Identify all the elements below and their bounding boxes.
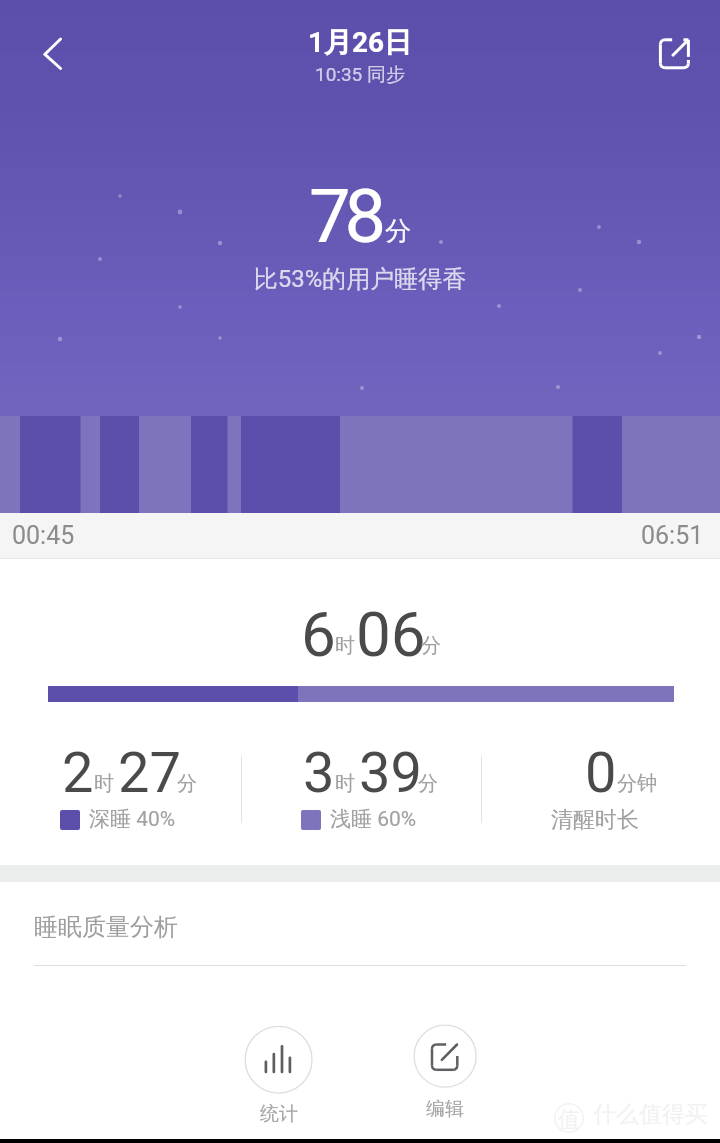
staticText: 27 (118, 740, 181, 806)
staticText: 0 (585, 740, 617, 806)
button[interactable]: 统计 (229, 1010, 329, 1142)
staticText: 6 (301, 598, 336, 671)
staticText: 分钟 (617, 771, 657, 796)
staticText: 06 (356, 598, 426, 671)
staticText: 统计 (260, 1102, 298, 1126)
staticText: 值 (558, 1106, 580, 1134)
button[interactable]: 编辑 (396, 1010, 496, 1142)
staticText: 分 (177, 771, 197, 796)
staticText: 1月26日 (0, 25, 720, 60)
staticText: 78 (309, 173, 381, 260)
staticText: 清醒时长 (551, 806, 639, 834)
staticText: 00:45 (12, 521, 75, 550)
button[interactable]: Share (637, 17, 703, 83)
staticText: 睡眠质量分析 (34, 912, 178, 942)
staticText: 深睡 40% (89, 806, 176, 832)
staticText: 分 (385, 215, 411, 248)
staticText: 时 (335, 771, 355, 796)
staticText: 10:35 同步 (0, 63, 720, 87)
staticText: 浅睡 60% (330, 806, 417, 832)
staticText: 分 (418, 771, 438, 796)
staticText: 什么值得买 (593, 1100, 708, 1129)
staticText: 时 (335, 633, 355, 658)
staticText: 39 (359, 740, 422, 806)
staticText: 时 (94, 771, 114, 796)
staticText: 3 (303, 740, 335, 806)
button[interactable]: 睡眠质量分析 (0, 882, 720, 965)
staticText: 比53%的用户睡得香 (0, 264, 720, 294)
staticText: 06:51 (641, 521, 704, 550)
button[interactable]: Back (18, 17, 84, 83)
staticText: 编辑 (426, 1097, 464, 1121)
staticText: 分 (421, 633, 441, 658)
staticText: 2 (62, 740, 94, 806)
